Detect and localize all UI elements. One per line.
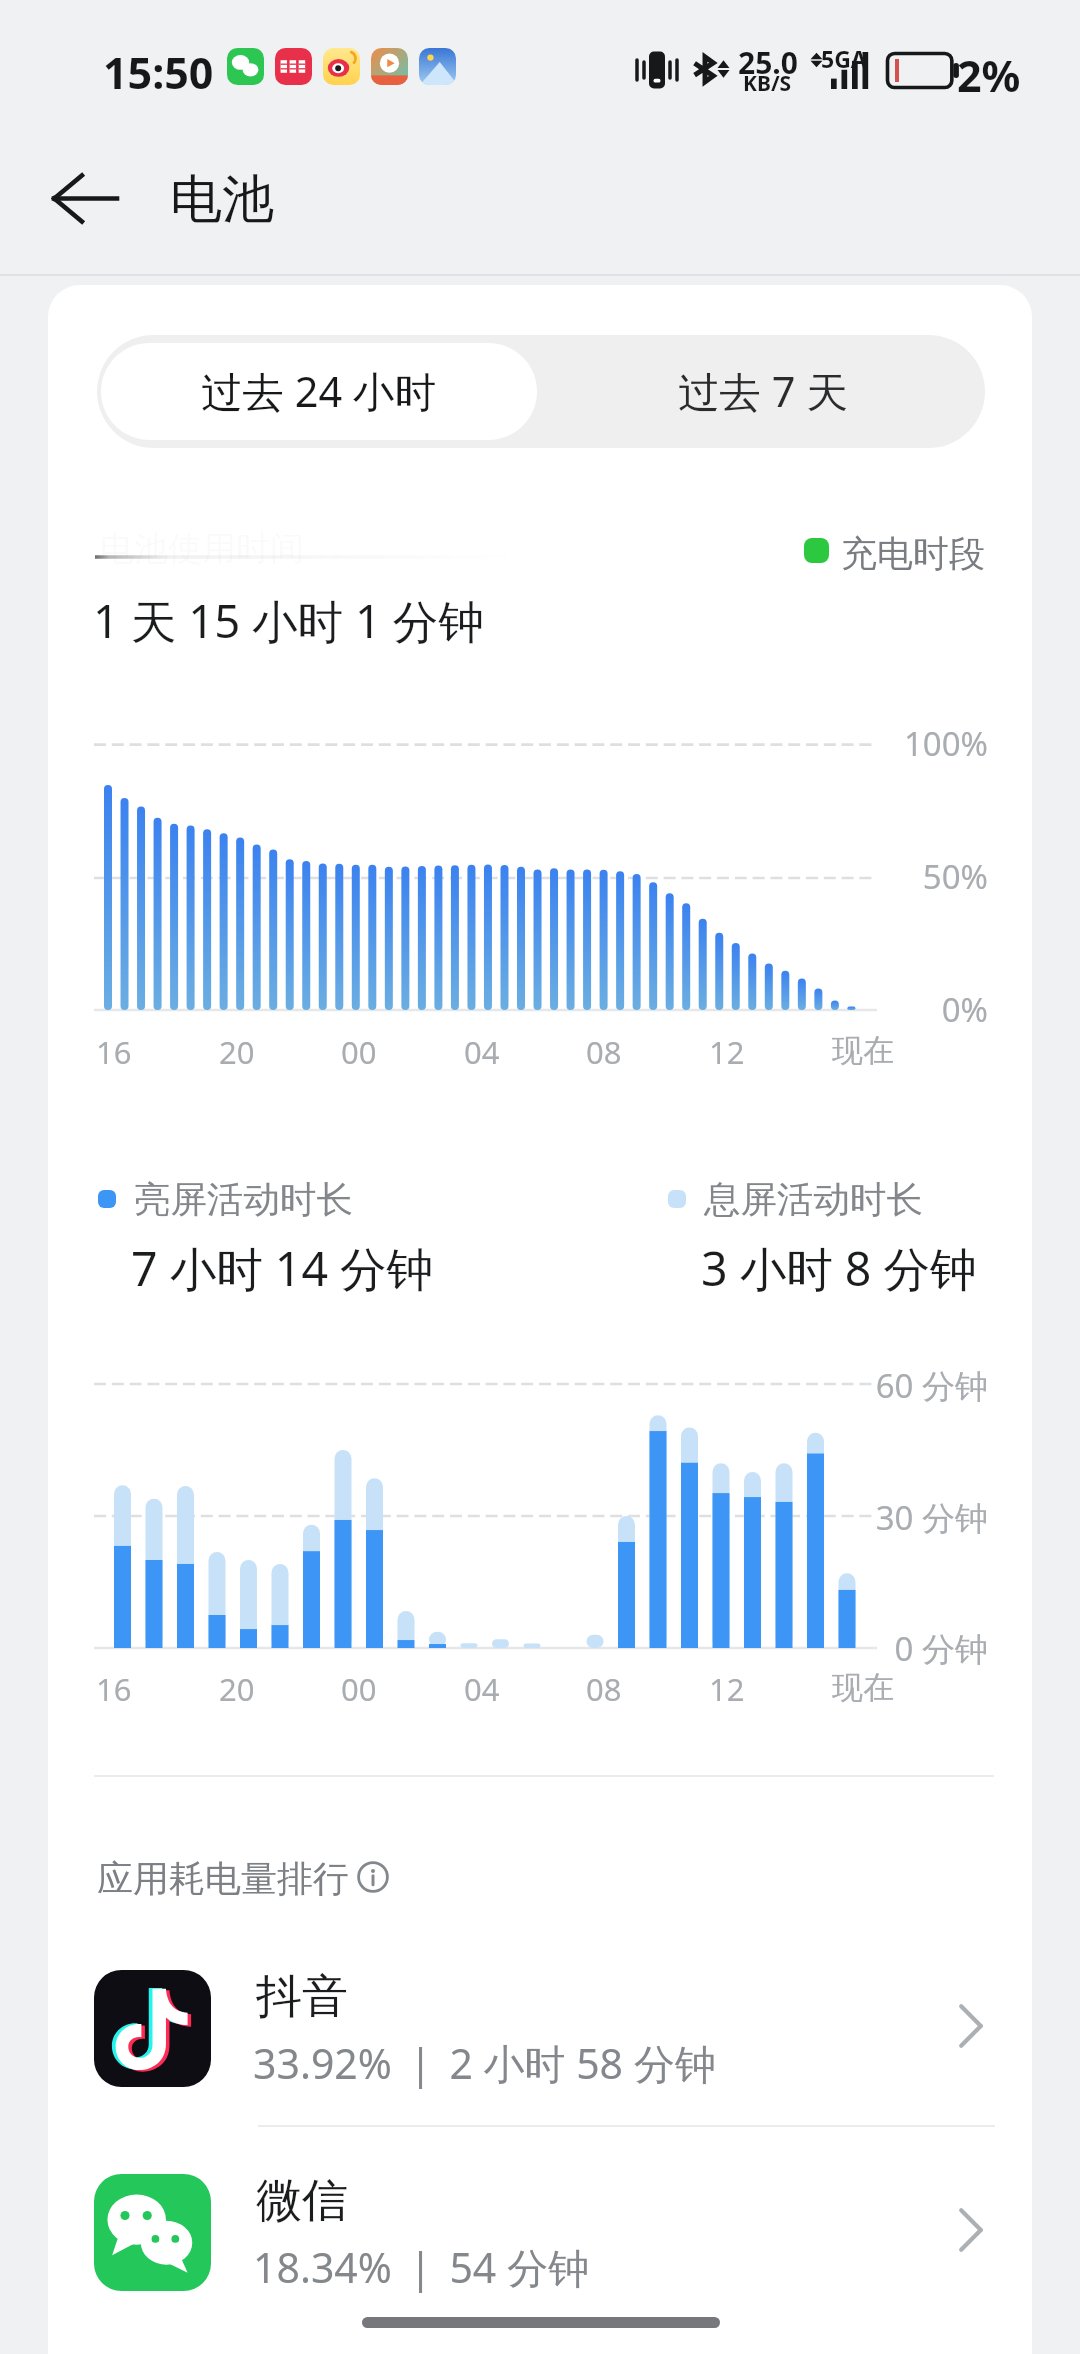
staticText: 1 天 15 小时 1 分钟 xyxy=(93,589,484,651)
staticText: 息屏活动时长 xyxy=(704,1177,923,1223)
staticText: 抖音 xyxy=(256,1968,348,2026)
staticText: 20 xyxy=(219,1031,255,1073)
button[interactable]: 微信 xyxy=(48,2138,984,2328)
staticText: 30 分钟 xyxy=(700,1495,988,1540)
staticText: 0% xyxy=(700,987,988,1032)
staticText: 16 xyxy=(96,1031,132,1073)
staticText: 08 xyxy=(586,1031,622,1073)
staticText: 04 xyxy=(464,1668,500,1710)
staticText: 亮屏活动时长 xyxy=(134,1177,353,1223)
staticText: 50% xyxy=(700,854,988,899)
staticText: 00 xyxy=(341,1031,377,1073)
staticText: 过去 7 天 xyxy=(678,363,848,420)
staticText: 16 xyxy=(96,1668,132,1710)
staticText: 25.0 xyxy=(738,42,798,83)
staticText: 应用耗电量排行 xyxy=(97,1856,349,1901)
staticText: KB/S xyxy=(743,69,792,98)
staticText: 08 xyxy=(586,1668,622,1710)
staticText: 20 xyxy=(219,1668,255,1710)
staticText: 33.92% | 2 小时 58 分钟 xyxy=(253,2035,716,2091)
button[interactable]: Back xyxy=(32,160,136,236)
staticText: 电池使用时间 xyxy=(100,527,304,570)
staticText: 60 分钟 xyxy=(700,1363,988,1408)
staticText: 12 xyxy=(709,1668,745,1710)
staticText: 现在 xyxy=(832,1668,894,1707)
button[interactable]: 过去 7 天 xyxy=(541,335,985,448)
staticText: 15:50 xyxy=(103,43,214,102)
staticText: 00 xyxy=(341,1668,377,1710)
staticText: 充电时段 xyxy=(841,531,985,576)
staticText: 3 小时 8 分钟 xyxy=(701,1236,977,1300)
button[interactable]: 抖音 xyxy=(48,1934,984,2124)
staticText: 2% xyxy=(957,46,1021,105)
staticText: 100% xyxy=(700,721,988,766)
staticText: 微信 xyxy=(256,2172,348,2230)
staticText: 18.34% | 54 分钟 xyxy=(253,2239,589,2295)
staticText: 电池 xyxy=(170,167,274,233)
staticText: 0 分钟 xyxy=(700,1626,988,1671)
staticText: 5GA xyxy=(821,43,867,74)
staticText: 12 xyxy=(709,1031,745,1073)
button[interactable]: 过去 24 小时 xyxy=(101,343,537,440)
staticText: 04 xyxy=(464,1031,500,1073)
staticText: 现在 xyxy=(832,1031,894,1070)
staticText: 过去 24 小时 xyxy=(201,363,437,420)
staticText: 7 小时 14 分钟 xyxy=(131,1236,434,1300)
